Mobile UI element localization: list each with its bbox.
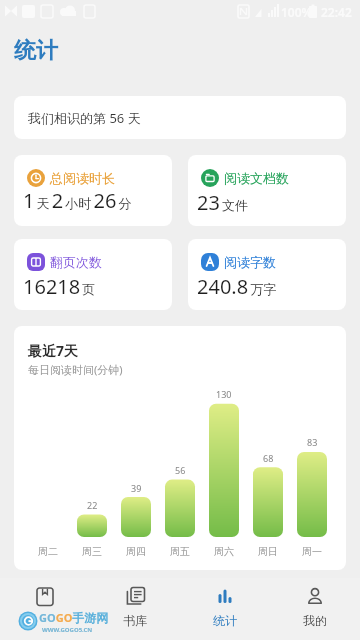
staticText: 240.8 万字: [197, 273, 277, 300]
staticText: 130: [216, 388, 232, 400]
staticText: 书架: [33, 613, 57, 628]
staticText: 周二: [38, 545, 58, 558]
button[interactable]: 翻页次数: [14, 239, 172, 310]
button[interactable]: 书库: [90, 578, 180, 640]
staticText: 83: [307, 436, 318, 448]
staticText: 39: [131, 482, 142, 494]
staticText: 56: [175, 464, 186, 476]
staticText: 22: [87, 499, 98, 511]
button[interactable]: 我们相识的第 56 天: [14, 96, 346, 139]
button[interactable]: 总阅读时长: [14, 155, 172, 226]
staticText: 22:42: [321, 4, 352, 20]
staticText: 统计: [213, 613, 237, 628]
staticText: 阅读字数: [224, 254, 276, 270]
staticText: 100%: [281, 4, 313, 20]
button[interactable]: 阅读字数: [188, 239, 346, 310]
staticText: 书库: [123, 613, 147, 628]
staticText: 阅读文档数: [224, 170, 289, 186]
staticText: 每日阅读时间(分钟): [28, 362, 123, 377]
staticText: WWW.GOGO5.CN: [42, 626, 93, 634]
staticText: 翻页次数: [50, 254, 102, 270]
staticText: 23 文件: [197, 189, 249, 216]
button[interactable]: 书架: [0, 578, 90, 640]
staticText: 周六: [214, 545, 234, 558]
staticText: 周四: [126, 545, 146, 558]
button[interactable]: 阅读文档数: [188, 155, 346, 226]
staticText: 周五: [170, 545, 190, 558]
staticText: 周三: [82, 545, 102, 558]
staticText: GOGO手游网: [39, 610, 109, 625]
button[interactable]: 我的: [270, 578, 360, 640]
staticText: 1 天 2 小时 26 分: [23, 187, 132, 214]
staticText: 我们相识的第 56 天: [28, 109, 141, 127]
staticText: 16218 页: [23, 273, 96, 300]
staticText: 总阅读时长: [50, 170, 115, 186]
staticText: 周一: [302, 545, 322, 558]
button[interactable]: 统计: [180, 578, 270, 640]
staticText: 统计: [14, 37, 58, 65]
staticText: 我的: [303, 613, 327, 628]
staticText: 68: [263, 452, 274, 464]
staticText: 周日: [258, 545, 278, 558]
staticText: 最近7天: [28, 341, 79, 360]
button[interactable]: 最近7天: [14, 326, 346, 570]
